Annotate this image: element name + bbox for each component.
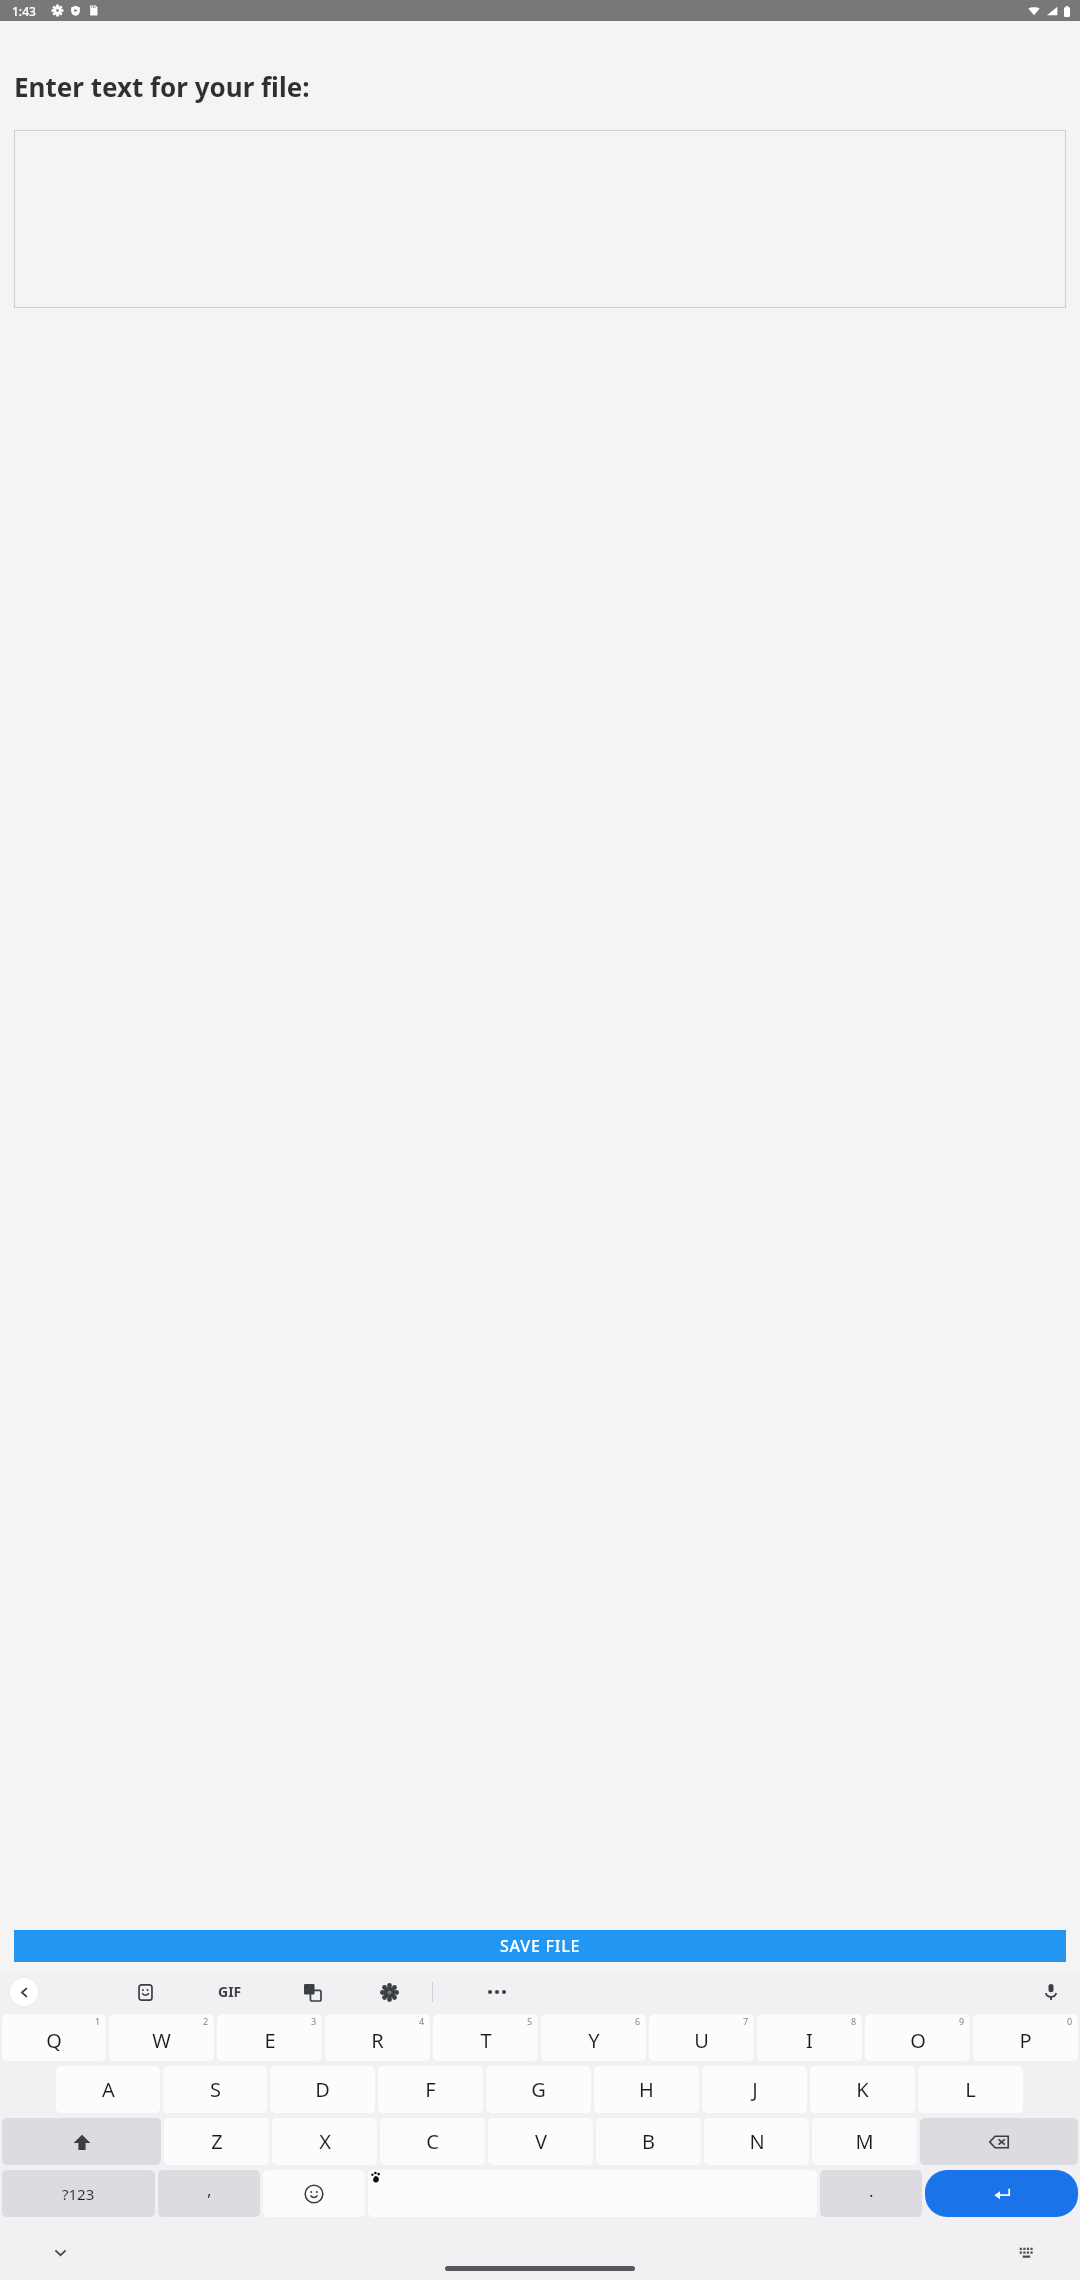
button[interactable]: R (325, 2014, 430, 2061)
button[interactable]: A (56, 2066, 160, 2113)
button[interactable]: Stickers (128, 1975, 162, 2009)
staticText: W (152, 2027, 171, 2054)
button[interactable]: Back (10, 1978, 38, 2006)
button[interactable]: Z (164, 2118, 269, 2165)
button[interactable]: Backspace (920, 2118, 1078, 2165)
staticText: ?123 (62, 2184, 95, 2204)
button[interactable]: Emoji (263, 2170, 365, 2217)
button[interactable]: M (812, 2118, 917, 2165)
button[interactable]: Q (2, 2014, 106, 2061)
staticText: P (1019, 2027, 1032, 2054)
button[interactable]: . (820, 2170, 922, 2217)
staticText: G (531, 2076, 546, 2103)
staticText: M (855, 2128, 874, 2155)
button[interactable]: G (486, 2066, 591, 2113)
button[interactable]: V (488, 2118, 593, 2165)
staticText: L (965, 2076, 976, 2103)
button[interactable]: Settings (372, 1975, 406, 2009)
button[interactable]: Y (541, 2014, 646, 2061)
button[interactable]: F (378, 2066, 483, 2113)
button[interactable]: More options (480, 1975, 514, 2009)
button[interactable]: B (596, 2118, 701, 2165)
button[interactable]: ?123 (2, 2170, 155, 2217)
button[interactable]: Translate (295, 1975, 329, 2009)
staticText: Q (46, 2027, 62, 2054)
staticText: X (319, 2128, 331, 2155)
staticText: J (752, 2076, 758, 2103)
staticText: B (642, 2128, 655, 2155)
staticText: N (749, 2128, 765, 2155)
staticText: 2 (203, 2015, 209, 2027)
staticText: 6 (635, 2015, 641, 2027)
button[interactable]: Voice input (1034, 1975, 1068, 2009)
staticText: T (480, 2027, 492, 2054)
staticText: F (425, 2076, 436, 2103)
button[interactable]: W (109, 2014, 214, 2061)
staticText: 7 (743, 2015, 749, 2027)
staticText: 4 (419, 2015, 425, 2027)
staticText: R (371, 2027, 384, 2054)
staticText: U (694, 2027, 709, 2054)
staticText: S (210, 2076, 221, 2103)
staticText: 9 (959, 2015, 965, 2027)
button[interactable]: L (918, 2066, 1023, 2113)
staticText: A (102, 2076, 115, 2103)
staticText: V (535, 2128, 547, 2155)
button[interactable]: T (433, 2014, 538, 2061)
staticText: , (207, 2178, 212, 2201)
staticText: K (856, 2076, 869, 2103)
button[interactable]: C (380, 2118, 485, 2165)
button[interactable]: K (810, 2066, 915, 2113)
staticText: SAVE FILE (500, 1935, 581, 1957)
button[interactable]: S (163, 2066, 267, 2113)
staticText: I (806, 2027, 813, 2054)
button[interactable]: N (704, 2118, 809, 2165)
staticText: E (264, 2027, 276, 2054)
staticText: Enter text for your file: (14, 69, 310, 104)
button[interactable]: H (594, 2066, 699, 2113)
staticText: O (910, 2027, 926, 2054)
staticText: 5 (527, 2015, 533, 2027)
button[interactable]: P (973, 2014, 1078, 2061)
staticText: . (869, 2179, 874, 2202)
button[interactable]: O (865, 2014, 970, 2061)
button[interactable]: D (270, 2066, 375, 2113)
staticText: 8 (851, 2015, 857, 2027)
staticText: 3 (311, 2015, 317, 2027)
button[interactable]: U (649, 2014, 754, 2061)
button[interactable]: X (272, 2118, 377, 2165)
button[interactable]: GIF (210, 1973, 250, 2010)
button[interactable]: Hide keyboard (42, 2234, 78, 2270)
button[interactable]: SAVE FILE (14, 1930, 1066, 1962)
staticText: 1:43 (12, 3, 36, 19)
staticText: GIF (218, 1982, 242, 2001)
button[interactable]: , (158, 2170, 260, 2217)
staticText: D (315, 2076, 330, 2103)
button[interactable]: E (217, 2014, 322, 2061)
staticText: H (639, 2076, 654, 2103)
staticText: 1 (95, 2015, 101, 2027)
staticText: Z (211, 2128, 223, 2155)
button[interactable]: J (702, 2066, 807, 2113)
button[interactable]: Shift (2, 2118, 161, 2165)
staticText: 0 (1067, 2015, 1073, 2027)
staticText: C (426, 2128, 439, 2155)
button[interactable]: Space (368, 2170, 817, 2217)
button[interactable] (14, 130, 1066, 308)
staticText: Y (588, 2027, 600, 2054)
button[interactable]: Enter (925, 2170, 1078, 2217)
button[interactable]: Switch keyboard (1008, 2234, 1044, 2270)
button[interactable]: I (757, 2014, 862, 2061)
